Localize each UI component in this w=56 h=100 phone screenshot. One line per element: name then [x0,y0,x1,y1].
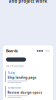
button[interactable]: Tomorrow [3,84,53,99]
button[interactable]: Today [3,70,53,84]
staticText: Tomorrow [7,86,20,89]
staticText: IN PROGRESS [6,65,23,68]
staticText: Boards [6,48,18,53]
staticText: Review design specs [7,90,42,95]
staticText: and project work [8,0,47,4]
staticText: Today [7,71,14,75]
staticText: Ship landing page [7,75,36,80]
